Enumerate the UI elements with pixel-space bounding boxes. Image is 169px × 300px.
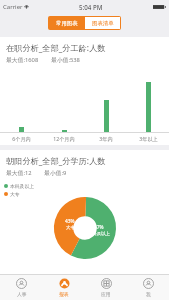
staticText: Carrier xyxy=(3,3,23,11)
staticText: 大专 xyxy=(10,191,20,197)
staticText: 3年内 xyxy=(99,135,113,142)
staticText: 最小值:9 xyxy=(44,169,67,177)
staticText: 5:04 PM xyxy=(79,3,103,11)
staticText: 最小值:538 xyxy=(51,56,80,64)
staticText: 常用图表 xyxy=(56,20,78,27)
staticText: 3年以上 xyxy=(139,135,158,142)
staticText: 报表 xyxy=(59,291,69,297)
staticText: 最大值:12 xyxy=(6,169,32,177)
button[interactable]: 人事 xyxy=(0,275,43,300)
staticText: 我 xyxy=(146,291,151,297)
staticText: 在职分析_全部_分工龄:人数 xyxy=(6,42,106,53)
button[interactable]: 应用 xyxy=(85,275,127,300)
staticText: 6个月内 xyxy=(12,135,31,142)
button[interactable]: 报表 xyxy=(43,275,85,300)
staticText: 人事 xyxy=(17,291,27,297)
staticText: 43% xyxy=(65,218,75,225)
staticText: 应用 xyxy=(101,291,111,297)
staticText: 本科及以上 xyxy=(10,183,34,189)
button[interactable]: 我 xyxy=(127,275,169,300)
staticText: 最大值:1608 xyxy=(6,56,39,64)
staticText: 图表清单 xyxy=(92,20,114,27)
staticText: 朝阳分析_全部_分学历:人数 xyxy=(6,155,106,166)
button[interactable]: 常用图表 xyxy=(49,17,84,29)
staticText: 57% xyxy=(94,224,104,231)
staticText: 12个月内 xyxy=(53,135,75,142)
button[interactable]: 图表清单 xyxy=(85,17,120,29)
staticText: 大专 xyxy=(66,225,75,231)
staticText: 本科及以上 xyxy=(88,231,110,237)
